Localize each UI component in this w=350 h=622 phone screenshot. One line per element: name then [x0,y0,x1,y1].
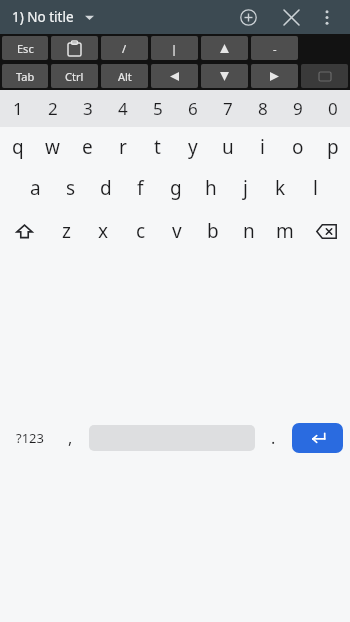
staticText: b [207,218,219,244]
staticText: x [98,218,109,244]
button[interactable]: q [0,127,35,167]
staticText: i [260,134,265,160]
button[interactable]: Backspace [303,209,350,253]
button[interactable]: Shift [0,209,48,253]
staticText: m [276,218,294,244]
button[interactable]: j [228,167,263,209]
staticText: f [137,175,144,201]
button[interactable]: 0 [315,90,350,127]
staticText: Tab [16,69,35,84]
staticText: q [12,134,24,160]
button[interactable]: n [231,209,267,253]
staticText: - [273,41,277,56]
staticText: | [171,41,178,56]
button[interactable]: Paste [51,36,98,60]
staticText: 1) No title [12,8,74,26]
button[interactable]: 1 [0,90,35,127]
button[interactable]: u [210,127,245,167]
staticText: ?123 [16,429,44,447]
staticText: 8 [258,97,268,120]
staticText: k [275,175,286,201]
button[interactable]: Tab [2,64,48,88]
button[interactable]: Ctrl [51,64,98,88]
button[interactable]: More options [310,0,344,34]
button[interactable]: 2 [35,90,70,127]
button[interactable]: - [251,36,298,60]
staticText: e [82,134,93,160]
button[interactable]: i [245,127,280,167]
staticText: , [68,427,73,449]
button[interactable]: 4 [105,90,140,127]
button[interactable]: g [158,167,193,209]
staticText: o [292,134,304,160]
button[interactable]: 5 [140,90,175,127]
button[interactable]: Esc [2,36,48,60]
button[interactable]: d [88,167,123,209]
button[interactable]: k [263,167,298,209]
staticText: n [243,218,255,244]
staticText: Alt [118,69,132,84]
button[interactable]: | [151,36,198,60]
staticText: / [122,41,127,56]
button[interactable]: c [122,209,159,253]
button[interactable]: z [48,209,85,253]
button[interactable]: a [17,167,53,209]
button[interactable]: Alt [101,64,148,88]
button[interactable]: 7 [210,90,245,127]
button[interactable]: 3 [70,90,105,127]
staticText: 3 [83,97,93,120]
staticText: h [205,175,217,201]
staticText: l [313,175,318,201]
button[interactable]: v [159,209,195,253]
button[interactable]: New session [231,0,265,34]
staticText: 4 [118,97,128,120]
button[interactable]: 6 [175,90,210,127]
button[interactable]: r [105,127,140,167]
staticText: d [100,175,112,201]
button[interactable]: o [280,127,315,167]
button[interactable]: 1) No title [0,4,100,30]
button[interactable]: Close [274,0,308,34]
staticText: 5 [153,97,163,120]
button[interactable]: Right [251,64,298,88]
staticText: c [136,218,146,244]
staticText: g [170,175,182,201]
button[interactable]: Keyboard [301,64,348,88]
button[interactable]: t [140,127,175,167]
button[interactable]: e [70,127,105,167]
button[interactable]: m [267,209,303,253]
staticText: 2 [48,97,58,120]
staticText: v [172,218,182,244]
staticText: y [188,134,198,160]
staticText: r [119,134,127,160]
staticText: Esc [17,41,34,56]
button[interactable]: s [53,167,88,209]
staticText: w [45,134,60,160]
button[interactable]: 9 [280,90,315,127]
button[interactable]: x [85,209,122,253]
button[interactable]: Left [151,64,198,88]
staticText: p [327,134,339,160]
button[interactable]: b [195,209,231,253]
button[interactable]: Up [201,36,248,60]
staticText: 7 [223,97,233,120]
staticText: 9 [293,97,303,120]
staticText: 0 [328,97,338,120]
button[interactable]: Enter [292,423,343,453]
button[interactable]: f [123,167,158,209]
staticText: 6 [188,97,198,120]
button[interactable]: ?123 [4,258,55,617]
staticText: t [154,134,161,160]
button[interactable]: h [193,167,228,209]
button[interactable]: / [101,36,148,60]
button[interactable]: y [175,127,210,167]
button[interactable]: w [35,127,70,167]
button[interactable]: 8 [245,90,280,127]
button[interactable]: Down [201,64,248,88]
button[interactable]: , [55,258,86,617]
button[interactable]: l [298,167,333,209]
button[interactable]: p [315,127,350,167]
staticText: a [30,175,41,201]
